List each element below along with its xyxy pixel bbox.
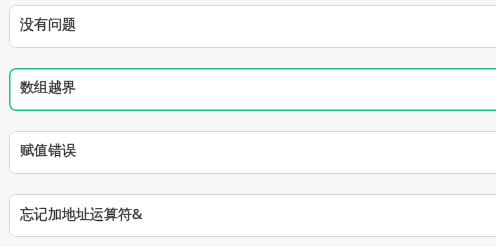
button[interactable]: 没有问题 bbox=[9, 5, 496, 48]
button[interactable]: 赋值错误 bbox=[9, 131, 496, 174]
staticText: 忘记加地址运算符& bbox=[20, 204, 143, 223]
staticText: 没有问题 bbox=[20, 16, 76, 34]
button[interactable]: 忘记加地址运算符& bbox=[9, 194, 496, 237]
staticText: 赋值错误 bbox=[20, 142, 76, 160]
staticText: 数组越界 bbox=[20, 79, 76, 97]
button[interactable]: 数组越界 bbox=[9, 68, 496, 111]
